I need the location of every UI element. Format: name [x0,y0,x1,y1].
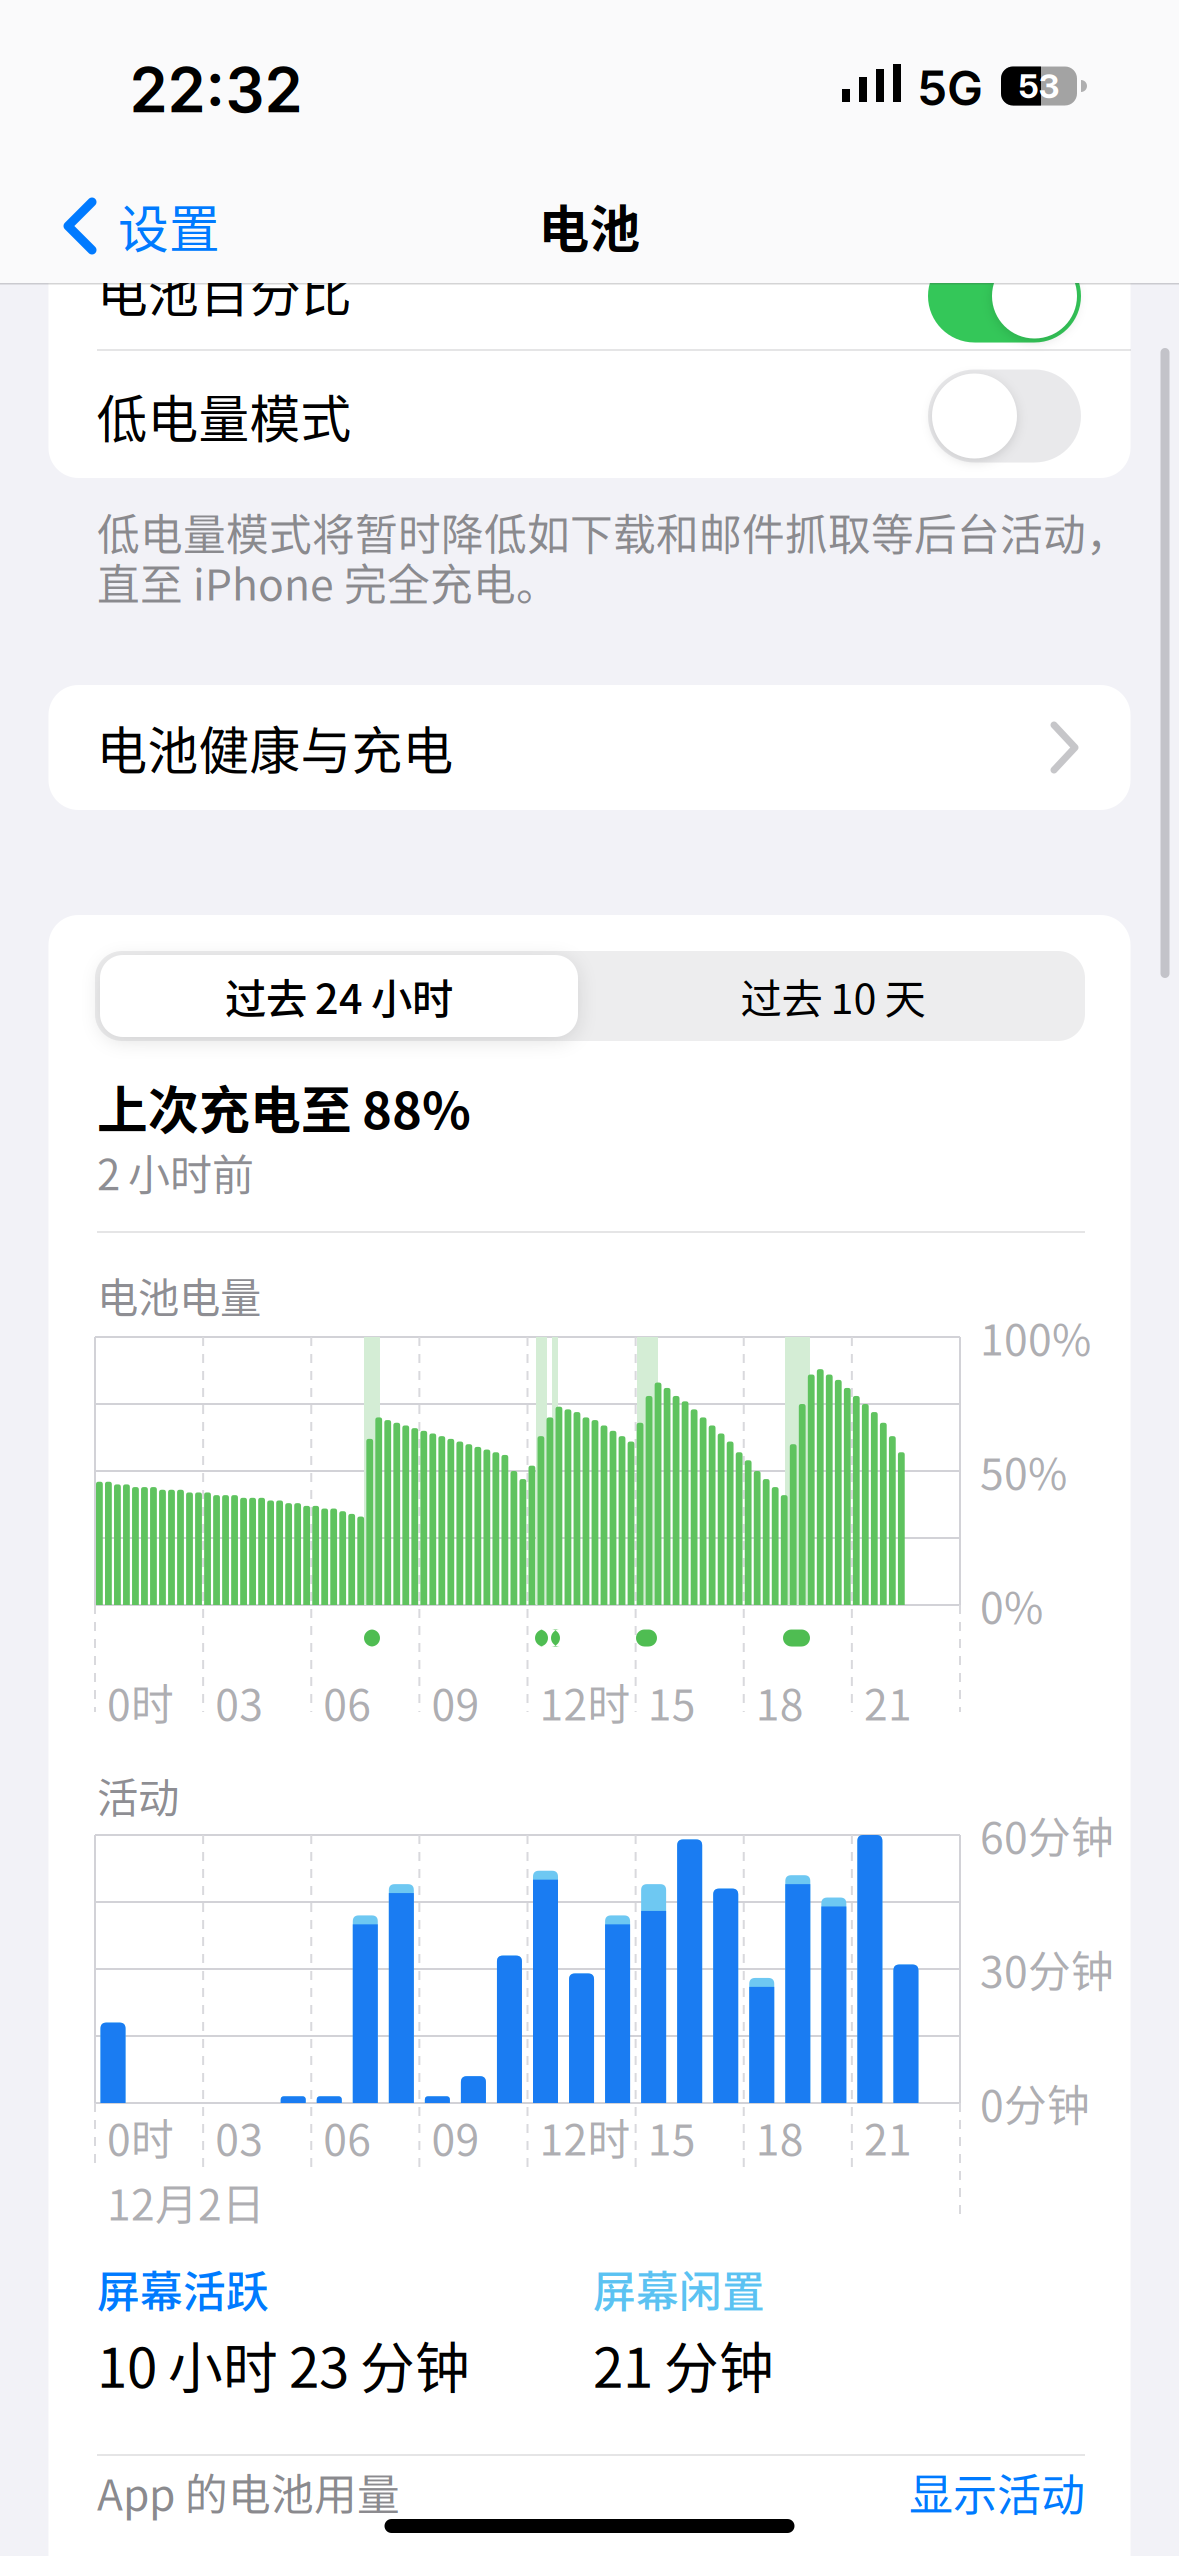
staticText: 电池电量 [97,1265,261,1325]
staticText: 12时 [539,2106,630,2168]
staticText: 5G [917,59,983,117]
staticText: 53 [1018,66,1059,106]
staticText: 电池 [538,189,640,263]
staticText: 过去 24 小时 [225,966,453,1026]
staticText: 15 [648,2106,696,2168]
staticText: 上次充电至 88% [97,1070,471,1144]
button[interactable] [95,951,1085,1041]
button[interactable]: 过去 24 小时 [100,955,578,1037]
staticText: 低电量模式将暂时降低如下载和邮件抓取等后台活动， [97,501,1129,563]
staticText: 10 小时 23 分钟 [97,2324,470,2404]
button[interactable]: 低电量模式 [48,352,1130,480]
staticText: 0% [980,1574,1043,1636]
staticText: 03 [215,2106,263,2168]
staticText: 直至 iPhone 完全充电。 [97,551,559,613]
staticText: 22:32 [129,53,302,127]
staticText: 18 [756,2106,804,2168]
staticText: 21 分钟 [593,2324,774,2404]
staticText: 显示活动 [909,2460,1085,2524]
staticText: 21 [864,2106,912,2168]
staticText: 12时 [539,1671,630,1733]
staticText: 18 [756,1671,804,1733]
staticText: 100% [980,1306,1091,1368]
staticText: 60分钟 [980,1804,1114,1866]
staticText: 电池健康与充电 [96,711,453,784]
staticText: 屏幕闲置 [593,2258,765,2320]
staticText: 过去 10 天 [740,966,925,1026]
staticText: 0时 [107,2106,174,2168]
button[interactable]: 电池健康与充电 [48,685,1130,810]
staticText: 06 [323,2106,371,2168]
staticText: 电池百分比 [97,253,352,327]
button[interactable]: 过去 10 天 [603,955,1063,1037]
button[interactable]: 设置 [25,186,255,266]
staticText: 09 [431,2106,479,2168]
staticText: 12月2日 [107,2171,265,2233]
staticText: 06 [323,1671,371,1733]
staticText: 21 [864,1671,912,1733]
staticText: 低电量模式 [96,379,351,453]
staticText: 设置 [118,189,220,263]
staticText: 03 [215,1671,263,1733]
button[interactable]: 显示活动 [685,2460,1085,2524]
staticText: 0分钟 [980,2072,1090,2134]
button[interactable] [928,249,1081,342]
staticText: 2 小时前 [97,1142,254,1202]
staticText: 活动 [97,1765,179,1825]
staticText: 15 [648,1671,696,1733]
staticText: 09 [431,1671,479,1733]
staticText: App 的电池用量 [97,2461,400,2523]
staticText: 50% [980,1440,1067,1502]
staticText: 30分钟 [980,1938,1114,2000]
staticText: 屏幕活跃 [97,2258,269,2320]
staticText: 0时 [107,1671,174,1733]
button[interactable] [928,369,1081,462]
